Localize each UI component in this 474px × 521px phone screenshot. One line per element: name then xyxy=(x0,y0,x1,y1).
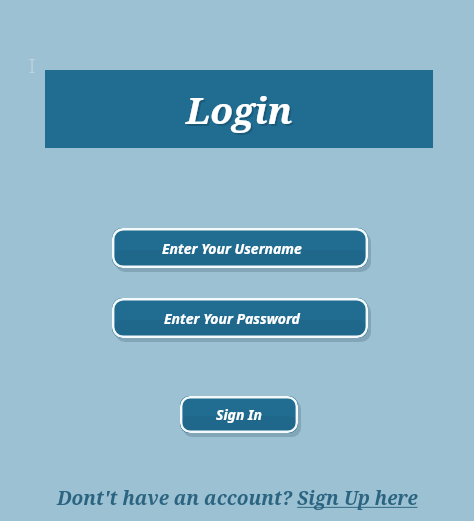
staticText: Enter Your Username xyxy=(162,239,302,258)
staticText: Sign In xyxy=(216,405,262,424)
button[interactable]: Enter Your Username xyxy=(112,228,368,268)
staticText: Dont't have an account? Sign Up here xyxy=(57,485,418,511)
button[interactable]: Enter Your Password xyxy=(112,298,368,338)
staticText: Login xyxy=(188,86,295,136)
staticText: Login xyxy=(186,84,293,134)
staticText: Enter Your Password xyxy=(164,309,300,328)
button[interactable]: Sign In xyxy=(180,396,298,433)
button[interactable]: Dont't have an account? Sign Up here xyxy=(0,483,474,513)
